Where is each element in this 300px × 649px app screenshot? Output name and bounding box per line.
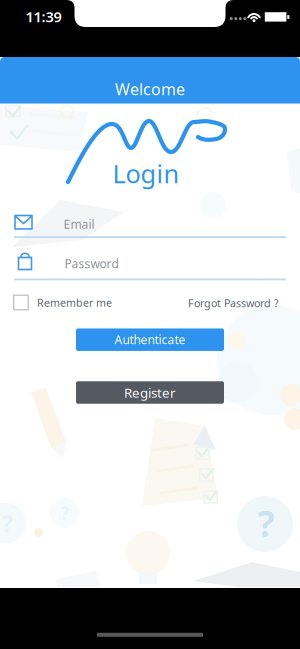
staticText: ? bbox=[1, 507, 12, 539]
button[interactable]: Email bbox=[14, 213, 286, 239]
staticText: Password bbox=[64, 255, 118, 271]
staticText: Register bbox=[124, 384, 176, 401]
staticText: ? bbox=[60, 501, 69, 525]
button[interactable]: Remember me bbox=[13, 294, 110, 311]
staticText: ? bbox=[257, 499, 274, 547]
staticText: Remember me bbox=[37, 295, 112, 310]
button[interactable]: Register bbox=[76, 381, 224, 404]
button[interactable]: Forgot Password ? bbox=[188, 296, 279, 310]
button[interactable]: Password bbox=[14, 248, 286, 280]
staticText: Welcome bbox=[115, 78, 185, 100]
staticText: Login bbox=[112, 157, 179, 190]
staticText: Forgot Password ? bbox=[188, 296, 279, 310]
staticText: Email bbox=[63, 216, 94, 232]
staticText: Authenticate bbox=[114, 332, 185, 348]
staticText: 11:39 bbox=[25, 7, 61, 26]
button[interactable]: Authenticate bbox=[76, 328, 224, 351]
